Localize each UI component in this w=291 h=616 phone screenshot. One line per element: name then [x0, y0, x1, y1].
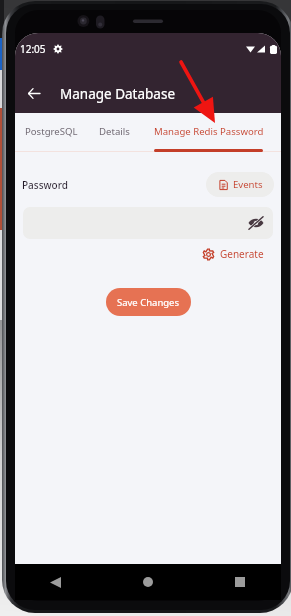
button[interactable]: Recent apps	[230, 572, 250, 592]
button[interactable]: Events	[206, 172, 274, 197]
button[interactable]: PostgreSQL	[21, 117, 82, 146]
button[interactable]: Back	[45, 572, 65, 592]
button[interactable]: Show password	[246, 213, 266, 233]
button[interactable]: Manage Redis Password	[150, 117, 268, 146]
button[interactable]: Generate	[199, 243, 268, 265]
staticText: Details	[99, 125, 130, 138]
staticText: Manage Database	[60, 85, 175, 103]
staticText: Manage Redis Password	[154, 125, 264, 138]
staticText: Events	[233, 178, 263, 191]
staticText: 12:05	[20, 42, 46, 56]
button[interactable]: Details	[95, 117, 134, 146]
staticText: Password	[22, 178, 68, 192]
staticText: Save Changes	[117, 296, 180, 309]
button[interactable]: Back	[21, 81, 46, 106]
staticText: Generate	[220, 247, 264, 261]
button[interactable]: Home	[138, 572, 158, 592]
button[interactable]: Save Changes	[106, 288, 191, 316]
staticText: PostgreSQL	[25, 125, 78, 138]
